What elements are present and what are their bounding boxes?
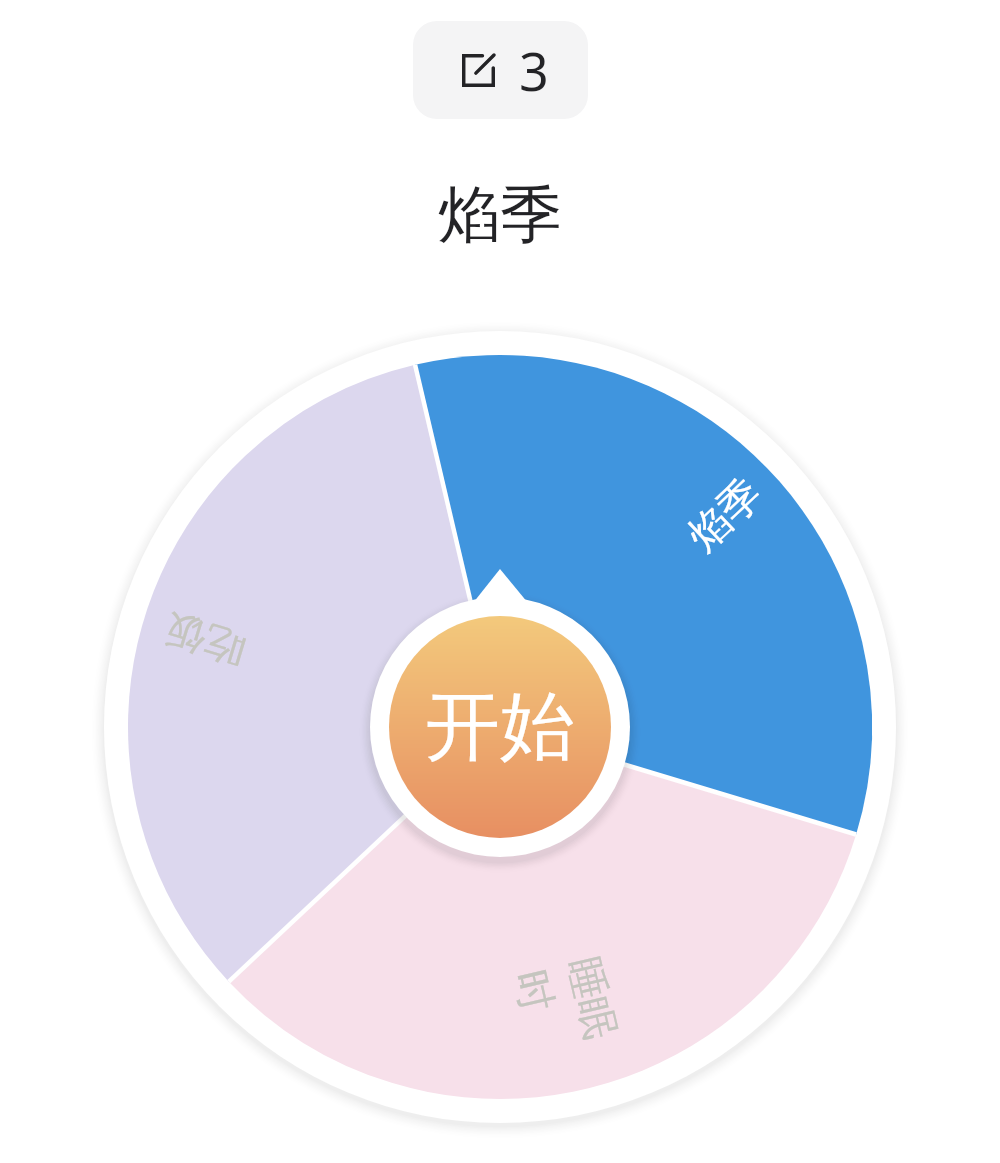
button[interactable]: Edit options (413, 21, 588, 119)
other: Edit options (462, 54, 495, 87)
button[interactable]: 开始 (370, 597, 630, 857)
staticText: 焰季 (438, 176, 562, 254)
other: Spin wheel (0, 0, 1000, 1163)
staticText: 3 (519, 35, 549, 106)
